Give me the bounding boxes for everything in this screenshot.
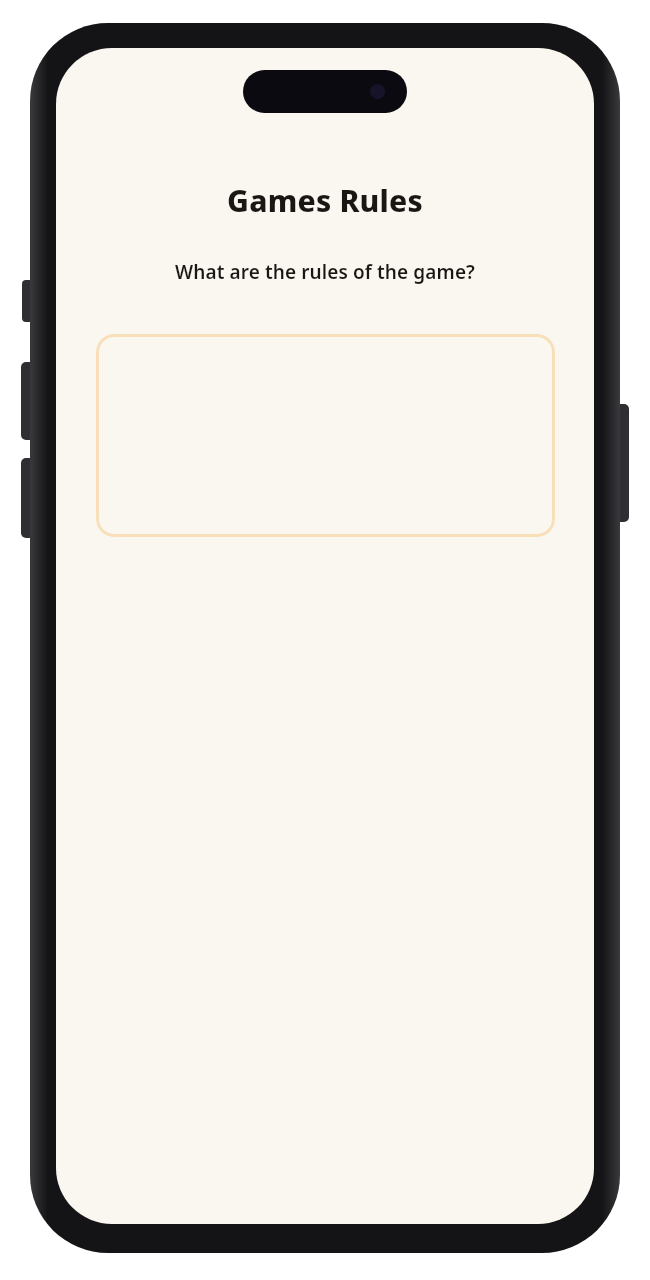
button[interactable]: Rules answer text field bbox=[96, 334, 555, 537]
staticText: Games Rules bbox=[56, 180, 594, 221]
staticText: What are the rules of the game? bbox=[56, 259, 594, 285]
